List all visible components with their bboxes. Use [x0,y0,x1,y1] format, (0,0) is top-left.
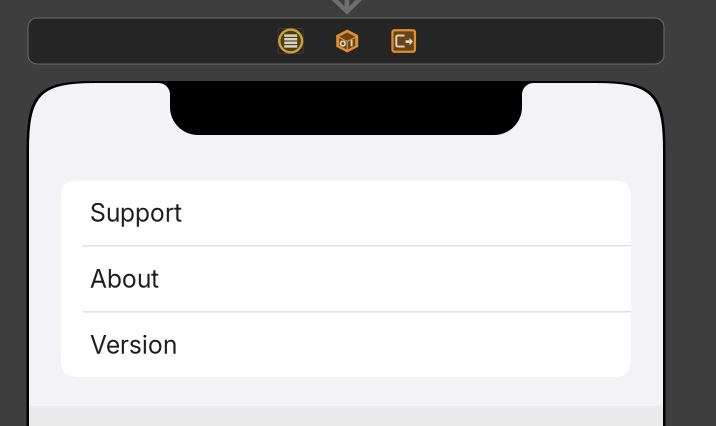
button[interactable]: About [61,246,631,312]
button[interactable]: Support [61,180,631,246]
button[interactable]: Inspect in 3D [333,27,361,55]
button[interactable]: Version [61,312,631,377]
button[interactable]: Open in Simulator [390,27,418,55]
button[interactable]: Live preview [277,27,305,55]
staticText: Support [90,198,182,228]
staticText: About [90,264,159,294]
staticText: Version [90,330,177,360]
